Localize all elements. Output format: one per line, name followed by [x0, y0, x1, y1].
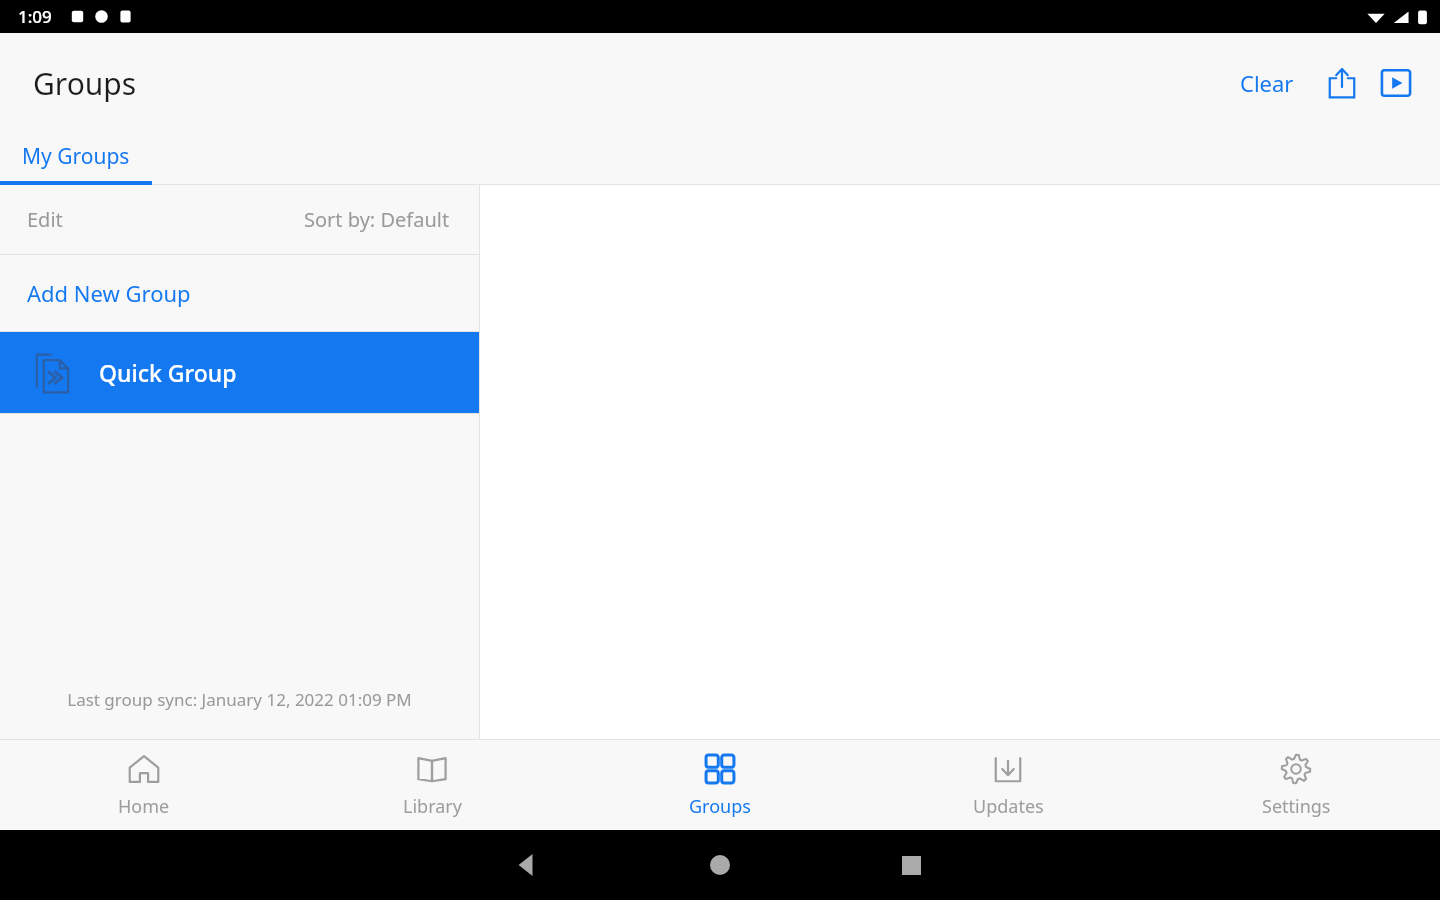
- staticText: Updates: [973, 794, 1044, 819]
- staticText: Sort by: Default: [304, 206, 450, 233]
- button[interactable]: Updates: [864, 740, 1152, 830]
- staticText: My Groups: [22, 142, 130, 171]
- button[interactable]: Share: [1318, 59, 1366, 107]
- staticText: Quick Group: [99, 357, 237, 388]
- staticText: Settings: [1262, 794, 1331, 819]
- staticText: Groups: [33, 63, 137, 104]
- button[interactable]: Home: [698, 843, 742, 887]
- button[interactable]: Library: [288, 740, 576, 830]
- button[interactable]: Quick Group: [0, 332, 479, 413]
- staticText: Last group sync: January 12, 2022 01:09 …: [0, 688, 479, 711]
- button[interactable]: Recent apps: [889, 843, 933, 887]
- button[interactable]: Settings: [1152, 740, 1440, 830]
- staticText: 1:09: [18, 5, 52, 28]
- staticText: Groups: [689, 794, 751, 819]
- staticText: Edit: [27, 206, 63, 233]
- button[interactable]: Add New Group: [0, 255, 479, 331]
- staticText: Home: [118, 794, 170, 819]
- button[interactable]: My Groups: [0, 133, 152, 185]
- button[interactable]: Play: [1372, 59, 1420, 107]
- button[interactable]: Home: [0, 740, 288, 830]
- button[interactable]: Clear: [1230, 58, 1304, 108]
- button[interactable]: Edit: [0, 185, 479, 254]
- staticText: Library: [403, 794, 462, 819]
- staticText: Clear: [1240, 68, 1294, 98]
- button[interactable]: Groups: [576, 740, 864, 830]
- staticText: Add New Group: [27, 278, 191, 308]
- button[interactable]: Back: [505, 843, 549, 887]
